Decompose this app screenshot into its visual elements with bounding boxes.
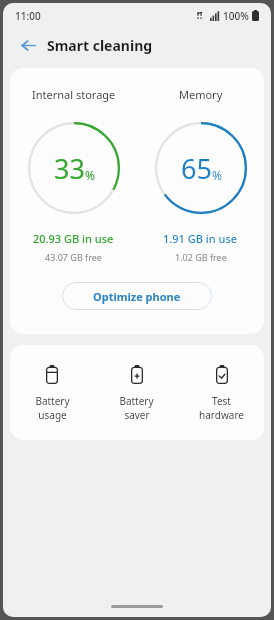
- staticText: %: [85, 167, 95, 183]
- staticText: Smart cleaning: [47, 36, 153, 55]
- staticText: 1.91 GB in use: [163, 231, 238, 246]
- button[interactable]: Optimize phone: [62, 282, 212, 310]
- staticText: 65: [181, 150, 212, 187]
- staticText: Internal storage: [32, 87, 116, 102]
- staticText: %: [212, 167, 222, 183]
- staticText: usage: [38, 408, 67, 422]
- staticText: 33: [54, 150, 85, 187]
- staticText: 43.07 GB free: [45, 251, 102, 263]
- staticText: Optimize phone: [93, 289, 181, 304]
- staticText: hardware: [199, 408, 244, 422]
- button[interactable]: Battery saver: [94, 363, 179, 422]
- staticText: Memory: [179, 87, 223, 102]
- staticText: 1.02 GB free: [175, 251, 227, 263]
- other: Battery saver: [126, 363, 148, 385]
- staticText: Battery: [119, 394, 154, 408]
- other: Test hardware: [211, 363, 233, 385]
- button[interactable]: Back: [15, 32, 41, 58]
- staticText: Test: [212, 394, 231, 408]
- other: Battery usage: [41, 363, 63, 385]
- button[interactable]: Battery usage: [10, 363, 94, 422]
- staticText: Battery: [35, 394, 70, 408]
- button[interactable]: Test hardware: [179, 363, 264, 422]
- staticText: 100%: [223, 9, 249, 23]
- staticText: saver: [124, 408, 150, 422]
- staticText: 11:00: [15, 9, 41, 23]
- staticText: 20.93 GB in use: [33, 231, 114, 246]
